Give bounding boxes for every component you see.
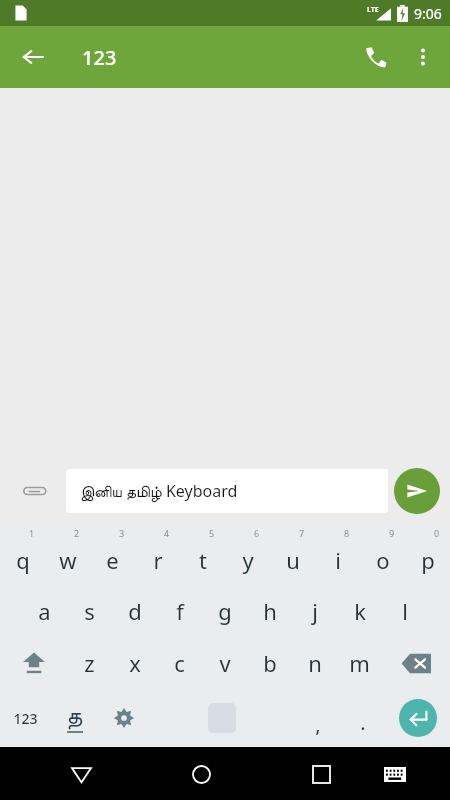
button[interactable]: 3 <box>90 525 135 585</box>
staticText: m <box>349 648 370 678</box>
button[interactable]: Send <box>394 468 440 514</box>
staticText: LTE <box>367 5 379 15</box>
button[interactable]: c <box>157 637 202 689</box>
button[interactable]: 1 <box>0 525 45 585</box>
staticText: e <box>106 545 119 575</box>
button[interactable]: d <box>112 585 157 637</box>
staticText: 7 <box>299 527 305 539</box>
staticText: z <box>84 648 95 678</box>
button[interactable]: a <box>22 585 67 637</box>
button[interactable]: k <box>337 585 382 637</box>
button[interactable]: Back <box>57 750 105 798</box>
button[interactable]: n <box>292 637 337 689</box>
button[interactable]: 5 <box>180 525 225 585</box>
staticText: 123 <box>82 44 117 71</box>
button[interactable]: 2 <box>45 525 90 585</box>
button[interactable]: Settings <box>99 689 148 747</box>
staticText: x <box>129 648 141 678</box>
staticText: i <box>335 545 341 575</box>
staticText: d <box>128 596 142 626</box>
button[interactable]: f <box>157 585 202 637</box>
staticText: , <box>315 711 321 738</box>
staticText: y <box>242 545 254 575</box>
staticText: o <box>376 545 390 575</box>
staticText: p <box>421 545 435 575</box>
button[interactable]: . <box>340 689 385 747</box>
button[interactable]: m <box>337 637 382 689</box>
button[interactable]: b <box>247 637 292 689</box>
staticText: f <box>176 596 184 626</box>
button[interactable]: v <box>202 637 247 689</box>
staticText: u <box>286 545 300 575</box>
button[interactable]: 6 <box>225 525 270 585</box>
staticText: l <box>402 596 408 626</box>
staticText: 6 <box>254 527 260 539</box>
staticText: s <box>84 596 95 626</box>
staticText: இனிய தமிழ் Keyboard <box>80 480 238 502</box>
button[interactable]: h <box>247 585 292 637</box>
staticText: c <box>174 648 185 678</box>
button[interactable]: Recents <box>297 750 345 798</box>
staticText: 5 <box>209 527 215 539</box>
staticText: . <box>360 709 366 736</box>
staticText: g <box>218 596 232 626</box>
button[interactable]: Backspace <box>382 637 450 689</box>
button[interactable]: இனிய தமிழ் Keyboard <box>66 469 388 513</box>
button[interactable]: 0 <box>405 525 450 585</box>
staticText: k <box>354 596 366 626</box>
staticText: 1 <box>29 527 35 539</box>
staticText: 4 <box>164 527 170 539</box>
staticText: 123 <box>13 709 38 728</box>
staticText: 0 <box>434 527 440 539</box>
staticText: 3 <box>119 527 125 539</box>
button[interactable]: Enter <box>385 689 450 747</box>
button[interactable]: Back <box>10 34 56 80</box>
staticText: r <box>153 545 163 575</box>
button[interactable]: Attach <box>12 470 54 512</box>
button[interactable]: l <box>382 585 427 637</box>
button[interactable]: Call <box>352 33 400 81</box>
staticText: 9:06 <box>414 4 442 23</box>
button[interactable]: Change keyboard <box>373 752 417 796</box>
button[interactable]: Home <box>177 750 225 798</box>
button[interactable]: 8 <box>315 525 360 585</box>
staticText: 9 <box>389 527 395 539</box>
staticText: t <box>199 545 207 575</box>
button[interactable]: j <box>292 585 337 637</box>
button[interactable]: 9 <box>360 525 405 585</box>
staticText: q <box>16 545 30 575</box>
staticText: j <box>312 596 318 626</box>
staticText: v <box>219 648 231 678</box>
button[interactable]: g <box>202 585 247 637</box>
button[interactable]: More options <box>400 34 446 80</box>
button[interactable]: , <box>295 689 340 747</box>
staticText: h <box>263 596 277 626</box>
button[interactable]: x <box>112 637 157 689</box>
button[interactable]: Shift <box>0 637 67 689</box>
button[interactable]: 7 <box>270 525 315 585</box>
button[interactable]: s <box>67 585 112 637</box>
staticText: த <box>66 704 83 729</box>
staticText: 2 <box>74 527 80 539</box>
button[interactable]: Tamil language <box>50 689 99 747</box>
button[interactable]: z <box>67 637 112 689</box>
staticText: 8 <box>344 527 350 539</box>
staticText: w <box>59 545 77 575</box>
staticText: a <box>38 596 51 626</box>
staticText: n <box>308 648 322 678</box>
button[interactable]: 123 <box>0 689 50 747</box>
button[interactable]: 4 <box>135 525 180 585</box>
button[interactable]: Space <box>148 689 295 747</box>
staticText: b <box>263 648 277 678</box>
